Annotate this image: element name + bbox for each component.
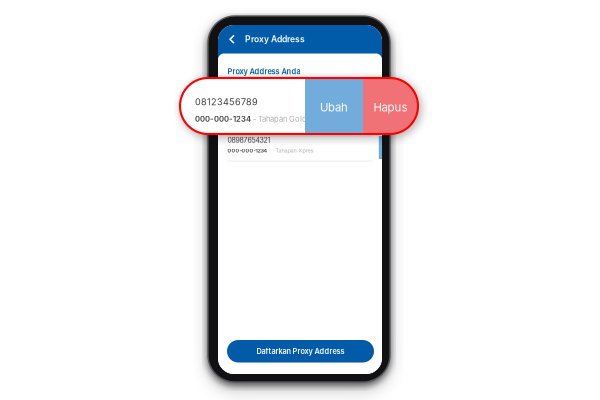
staticText: Tahapan Xpresi (275, 147, 314, 154)
button[interactable]: Back (223, 25, 240, 53)
staticText: - (251, 114, 258, 124)
staticText: Ubah (320, 101, 348, 114)
staticText: 000-000-1234 (195, 114, 251, 124)
staticText: 08123456789 (195, 96, 258, 107)
button[interactable]: 08123456789 (218, 109, 382, 136)
staticText: Tahapan Gold (275, 122, 309, 129)
staticText: - (267, 122, 275, 129)
button[interactable]: Ubah (305, 78, 363, 134)
button[interactable]: 08987654321 (218, 134, 382, 161)
staticText: Proxy Address (245, 34, 305, 44)
staticText: 08123456789 (227, 111, 270, 119)
staticText: 08987654321 (227, 136, 270, 144)
staticText: Proxy Address Anda (227, 67, 300, 76)
staticText: Hapus (373, 101, 407, 114)
staticText: Tahapan Gold (258, 114, 307, 124)
staticText: 000-000-1234 (227, 147, 267, 154)
staticText: Daftarkan Proxy Address (256, 347, 344, 356)
button[interactable]: Daftarkan Proxy Address (227, 340, 374, 362)
button[interactable]: Hapus (363, 78, 418, 134)
